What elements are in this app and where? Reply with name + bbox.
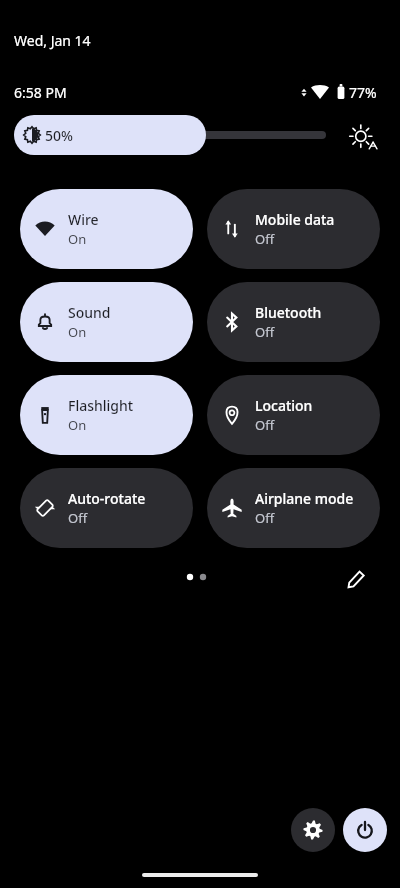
staticText: Airplane mode xyxy=(255,489,354,508)
button[interactable]: Auto-rotate xyxy=(20,468,193,548)
staticText: 77% xyxy=(349,83,377,102)
staticText: On xyxy=(68,416,87,434)
button[interactable]: Bluetooth xyxy=(207,282,380,362)
button[interactable]: Power xyxy=(343,808,387,852)
button[interactable]: Airplane mode xyxy=(207,468,380,548)
staticText: Flashlight xyxy=(68,396,134,415)
staticText: 50% xyxy=(45,126,73,145)
button[interactable]: Location xyxy=(207,375,380,455)
staticText: On xyxy=(68,323,87,341)
staticText: On xyxy=(68,230,87,248)
button[interactable]: Mobile data xyxy=(207,189,380,269)
button[interactable]: Edit tiles xyxy=(340,562,372,594)
staticText: Off xyxy=(255,416,275,434)
staticText: Wire xyxy=(68,210,99,229)
button[interactable]: Settings xyxy=(291,808,335,852)
staticText: Location xyxy=(255,396,313,415)
button[interactable]: Sound xyxy=(20,282,193,362)
staticText: Off xyxy=(255,323,275,341)
staticText: Wed, Jan 14 xyxy=(14,31,91,50)
staticText: Auto-rotate xyxy=(68,489,146,508)
staticText: Off xyxy=(255,509,275,527)
button[interactable]: Flashlight xyxy=(20,375,193,455)
staticText: Mobile data xyxy=(255,210,335,229)
staticText: Off xyxy=(68,509,88,527)
staticText: Sound xyxy=(68,303,111,322)
staticText: Bluetooth xyxy=(255,303,322,322)
staticText: 6:58 PM xyxy=(14,83,67,102)
button[interactable]: Brightness xyxy=(14,115,326,155)
button[interactable]: Wire xyxy=(20,189,193,269)
staticText: Off xyxy=(255,230,275,248)
button[interactable]: Auto brightness xyxy=(344,120,380,156)
